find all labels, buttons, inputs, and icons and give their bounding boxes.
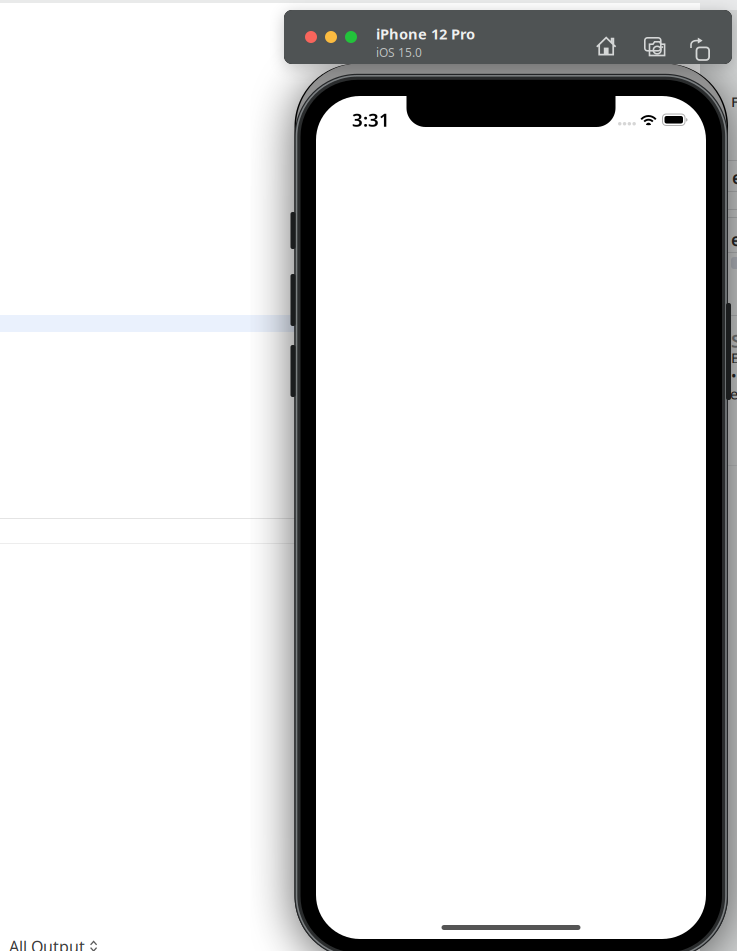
staticText: • [731, 366, 737, 385]
button[interactable]: Home [596, 36, 617, 56]
staticText: et [731, 228, 737, 251]
staticText: F [731, 92, 737, 111]
button[interactable]: Zoom [345, 31, 357, 43]
button[interactable]: Share [690, 34, 711, 61]
staticText: All Output [9, 936, 85, 951]
button[interactable]: Screenshot [644, 37, 667, 57]
staticText: iOS 15.0 [376, 44, 422, 60]
button[interactable]: All Output [9, 934, 98, 951]
staticText: S [731, 328, 737, 353]
staticText: er [730, 384, 737, 403]
staticText: iPhone 12 Pro [376, 24, 475, 43]
staticText: 3:31 [352, 107, 390, 132]
staticText: e [732, 166, 737, 189]
button[interactable]: Minimize [325, 31, 337, 43]
button[interactable]: Close [305, 31, 317, 43]
staticText: E [731, 348, 737, 367]
